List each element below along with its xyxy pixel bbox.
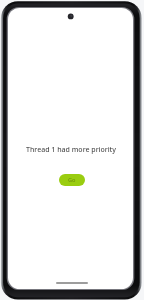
button[interactable]: Home gesture handle [56, 282, 88, 284]
button[interactable]: Go [59, 174, 85, 186]
staticText: Thread 1 had more priority [26, 145, 116, 155]
staticText: Go [68, 176, 76, 184]
